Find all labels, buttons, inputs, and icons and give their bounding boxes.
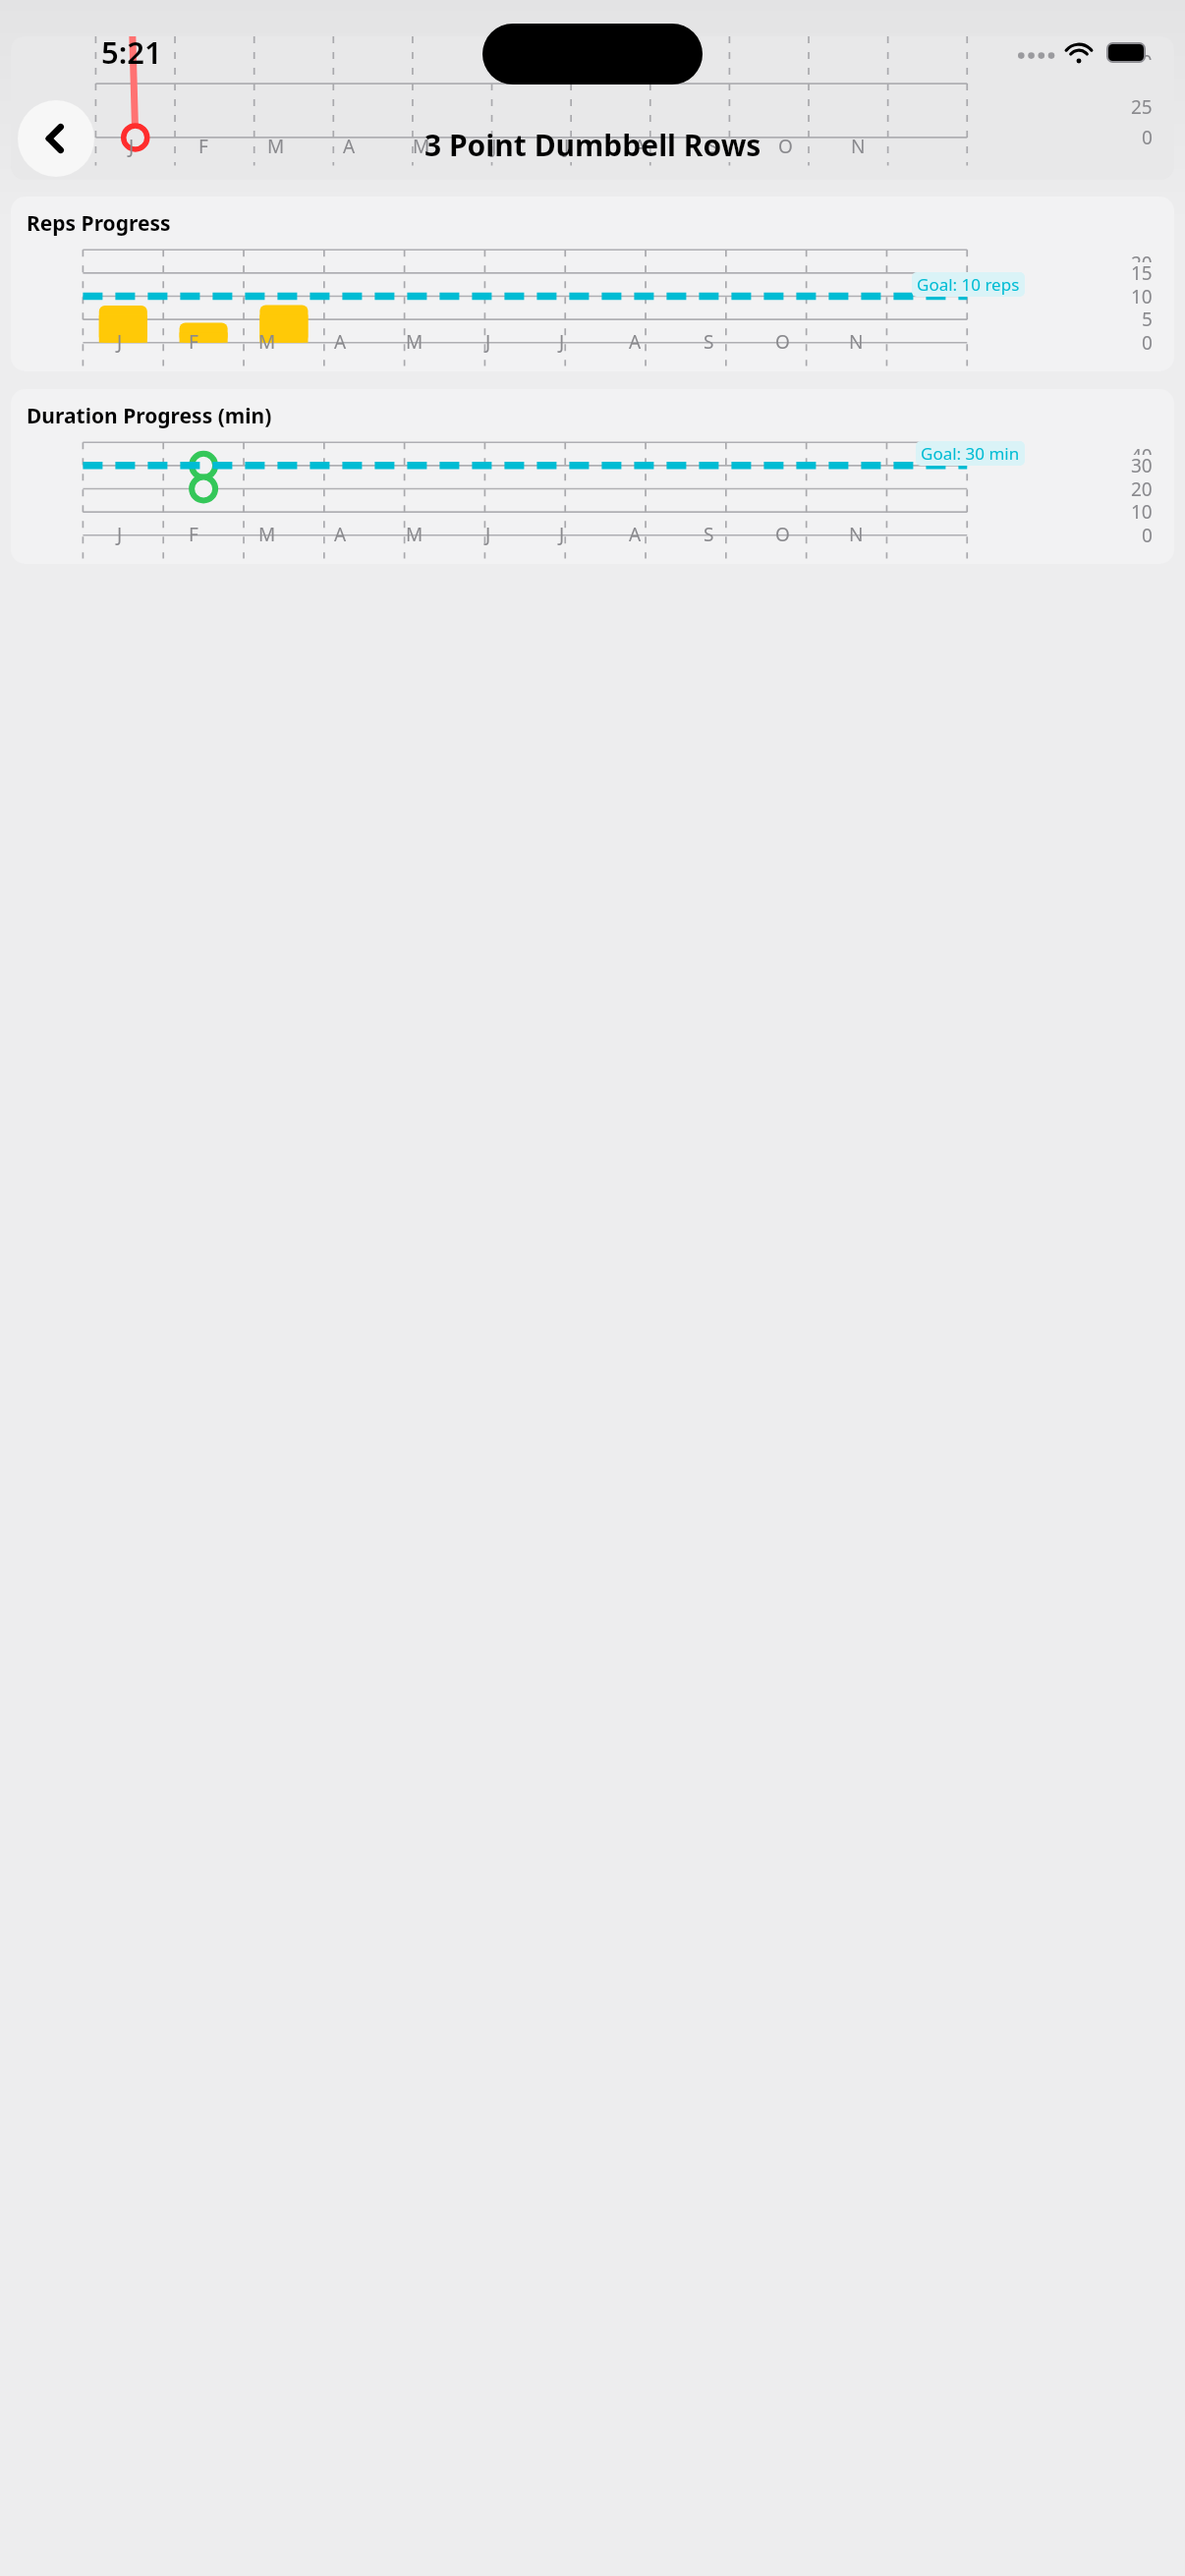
staticText: M (267, 134, 285, 159)
staticText: S (707, 134, 718, 159)
staticText: N (849, 329, 864, 355)
staticText: O (775, 329, 790, 355)
staticText: M (258, 329, 276, 355)
staticText: 50 (1131, 49, 1153, 60)
staticText: J (117, 329, 123, 355)
staticText: A (629, 522, 642, 547)
staticText: M (406, 329, 423, 355)
staticText: 5:21 (101, 31, 162, 73)
staticText: A (334, 522, 347, 547)
staticText: Goal: 10 reps (917, 273, 1020, 296)
staticText: N (849, 522, 864, 547)
staticText: Reps Progress (27, 209, 171, 238)
staticText: S (704, 522, 714, 547)
staticText: S (704, 329, 714, 355)
staticText: 3 Point Dumbbell Rows (424, 125, 762, 165)
staticText: 0 (1142, 330, 1153, 356)
staticText: 20 (1131, 251, 1153, 262)
staticText: Duration Progress (min) (27, 402, 272, 430)
staticText: F (198, 134, 208, 159)
staticText: Goal: 30 min (921, 442, 1020, 465)
staticText: M (406, 522, 423, 547)
staticText: 15 (1131, 260, 1153, 286)
staticText: N (851, 134, 866, 159)
button[interactable]: Duration Progress (min) (11, 389, 1174, 564)
staticText: M (258, 522, 276, 547)
staticText: A (343, 134, 356, 159)
staticText: 25 (1131, 94, 1153, 120)
staticText: 10 (1131, 284, 1153, 309)
staticText: O (778, 134, 793, 159)
staticText: A (334, 329, 347, 355)
staticText: J (564, 134, 570, 159)
staticText: J (117, 522, 123, 547)
button[interactable]: Back (18, 100, 94, 177)
staticText: F (189, 329, 198, 355)
staticText: 0 (1142, 523, 1153, 548)
staticText: 40 (1131, 443, 1153, 455)
button[interactable]: Reps Progress (11, 196, 1174, 371)
staticText: 30 (1131, 453, 1153, 478)
staticText: J (559, 329, 565, 355)
staticText: J (485, 329, 491, 355)
staticText: J (129, 134, 135, 159)
staticText: F (189, 522, 198, 547)
staticText: 5 (1142, 307, 1153, 332)
staticText: J (559, 522, 565, 547)
staticText: 0 (1142, 125, 1153, 150)
staticText: 10 (1131, 499, 1153, 525)
staticText: M (413, 134, 430, 159)
staticText: J (491, 134, 497, 159)
staticText: A (629, 329, 642, 355)
staticText: J (485, 522, 491, 547)
button[interactable]: 50 (11, 36, 1174, 180)
staticText: A (634, 134, 647, 159)
staticText: 20 (1131, 476, 1153, 502)
staticText: O (775, 522, 790, 547)
